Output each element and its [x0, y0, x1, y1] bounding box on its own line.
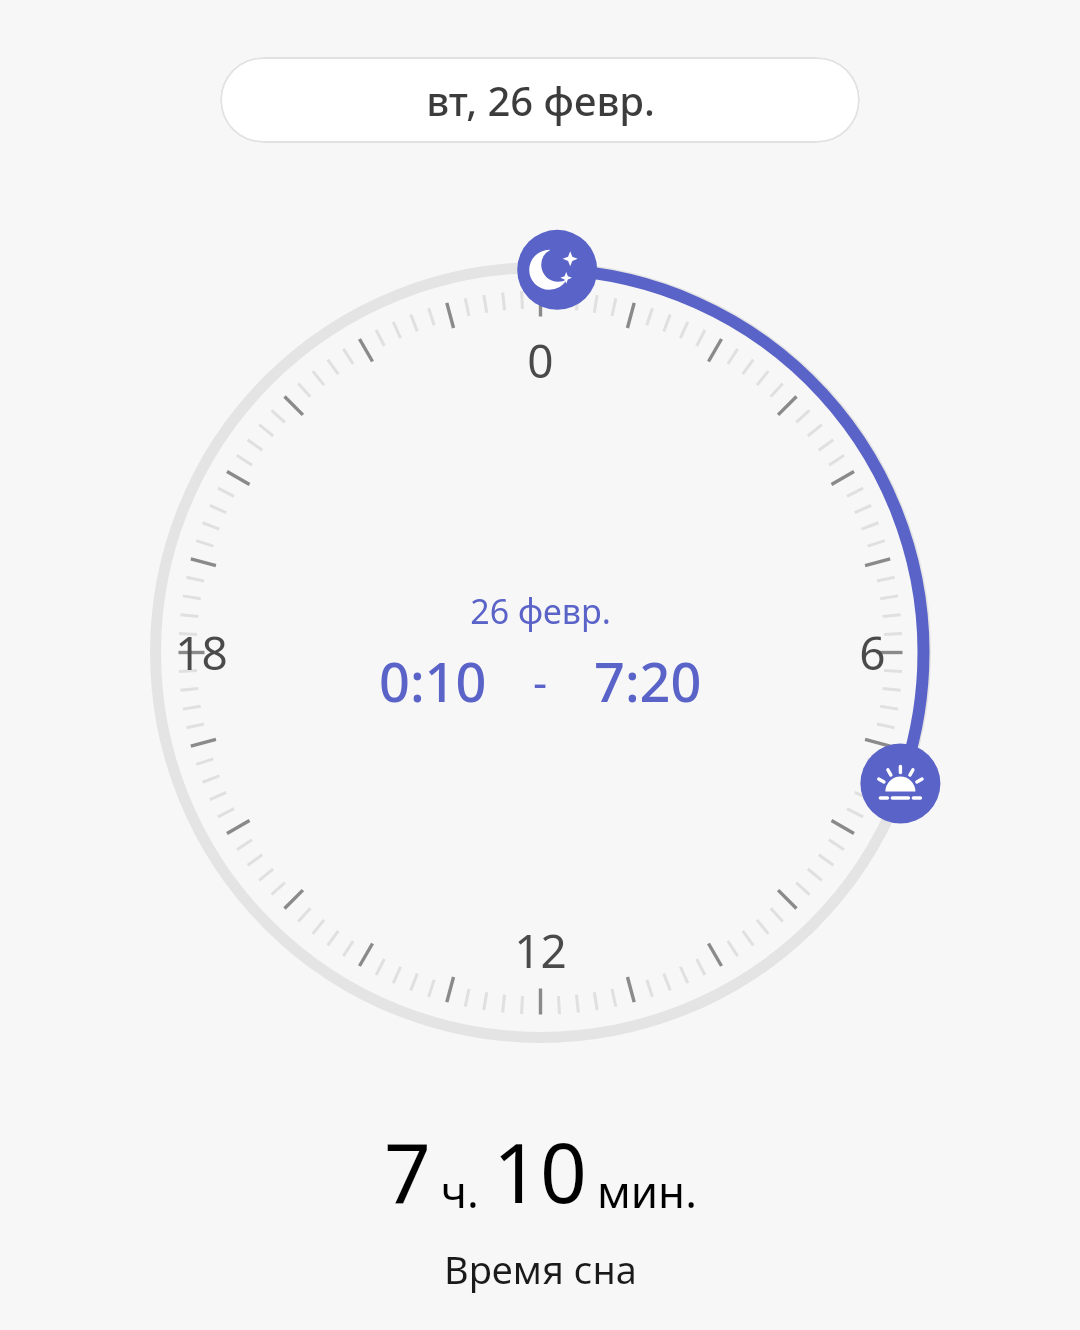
staticText: 7:20: [594, 644, 702, 718]
staticText: -: [533, 651, 548, 711]
staticText: ч.: [441, 1161, 479, 1221]
staticText: мин.: [597, 1161, 697, 1221]
staticText: 7: [384, 1115, 431, 1227]
button[interactable]: вт, 26 февр.: [220, 57, 860, 143]
staticText: 6: [859, 621, 886, 684]
staticText: 12: [514, 919, 567, 982]
staticText: 0:10: [379, 644, 487, 718]
staticText: вт, 26 февр.: [426, 73, 655, 127]
staticText: Время сна: [444, 1243, 637, 1295]
staticText: 10: [493, 1115, 587, 1227]
staticText: 18: [175, 621, 228, 684]
staticText: 0: [527, 329, 554, 392]
button[interactable]: Sleep time dial 0:10 to 7:20: [133, 245, 948, 1060]
staticText: 26 февр.: [470, 588, 611, 634]
